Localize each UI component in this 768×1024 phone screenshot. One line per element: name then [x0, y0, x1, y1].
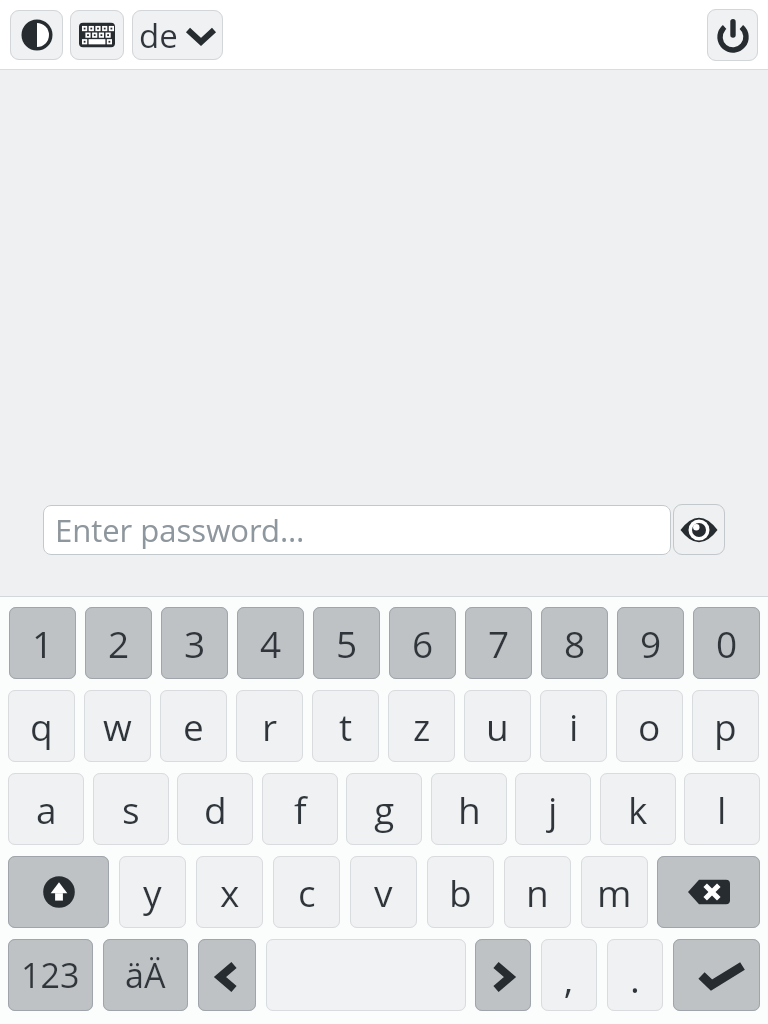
button[interactable]: e: [160, 690, 227, 762]
staticText: y: [143, 867, 162, 917]
staticText: x: [220, 867, 240, 917]
button[interactable]: t: [312, 690, 379, 762]
staticText: c: [298, 867, 316, 917]
staticText: 4: [260, 618, 282, 668]
staticText: o: [638, 701, 661, 751]
button[interactable]: Enter password…: [43, 505, 671, 555]
button[interactable]: de: [132, 10, 223, 60]
button[interactable]: 0: [693, 607, 760, 679]
button[interactable]: [707, 9, 758, 61]
staticText: j: [548, 784, 558, 834]
button[interactable]: ,: [541, 939, 597, 1011]
button[interactable]: [266, 939, 466, 1011]
button[interactable]: z: [388, 690, 455, 762]
button[interactable]: [198, 939, 256, 1011]
button[interactable]: o: [616, 690, 683, 762]
button[interactable]: j: [515, 773, 591, 845]
staticText: l: [717, 784, 727, 834]
staticText: ,: [564, 953, 574, 1003]
button[interactable]: c: [273, 856, 340, 928]
button[interactable]: [673, 504, 725, 555]
button[interactable]: 9: [617, 607, 684, 679]
staticText: 5: [336, 618, 358, 668]
button[interactable]: p: [692, 690, 759, 762]
staticText: h: [458, 784, 481, 834]
staticText: k: [628, 784, 648, 834]
button[interactable]: [70, 10, 124, 60]
button[interactable]: u: [464, 690, 531, 762]
button[interactable]: d: [177, 773, 253, 845]
button[interactable]: 6: [389, 607, 456, 679]
staticText: 2: [108, 618, 130, 668]
staticText: r: [262, 701, 278, 751]
button[interactable]: [10, 10, 63, 60]
button[interactable]: 5: [313, 607, 380, 679]
button[interactable]: .: [607, 939, 663, 1011]
button[interactable]: [673, 939, 760, 1011]
button[interactable]: n: [504, 856, 571, 928]
staticText: e: [183, 701, 204, 751]
button[interactable]: 123: [8, 939, 93, 1011]
staticText: s: [122, 784, 140, 834]
staticText: f: [294, 784, 307, 834]
staticText: q: [30, 701, 53, 751]
button[interactable]: q: [8, 690, 75, 762]
button[interactable]: w: [84, 690, 151, 762]
button[interactable]: 8: [541, 607, 608, 679]
staticText: m: [597, 867, 632, 917]
staticText: u: [486, 701, 509, 751]
button[interactable]: a: [8, 773, 84, 845]
staticText: 7: [488, 618, 510, 668]
staticText: d: [204, 784, 227, 834]
staticText: de: [139, 13, 178, 58]
button[interactable]: [8, 856, 109, 928]
button[interactable]: s: [93, 773, 169, 845]
staticText: 123: [21, 952, 80, 998]
staticText: 8: [564, 618, 586, 668]
button[interactable]: v: [350, 856, 417, 928]
staticText: 1: [32, 618, 54, 668]
staticText: äÄ: [125, 952, 166, 998]
staticText: n: [526, 867, 549, 917]
button[interactable]: [475, 939, 531, 1011]
button[interactable]: i: [540, 690, 607, 762]
staticText: 3: [184, 618, 206, 668]
button[interactable]: 1: [9, 607, 76, 679]
button[interactable]: 7: [465, 607, 532, 679]
staticText: 9: [640, 618, 662, 668]
staticText: b: [449, 867, 472, 917]
button[interactable]: m: [581, 856, 648, 928]
button[interactable]: b: [427, 856, 494, 928]
staticText: t: [339, 701, 353, 751]
button[interactable]: f: [262, 773, 338, 845]
button[interactable]: h: [431, 773, 507, 845]
staticText: a: [36, 784, 57, 834]
button[interactable]: l: [684, 773, 760, 845]
staticText: Enter password…: [55, 509, 305, 551]
staticText: v: [374, 867, 393, 917]
button[interactable]: 3: [161, 607, 228, 679]
button[interactable]: 2: [85, 607, 152, 679]
staticText: g: [374, 784, 395, 834]
staticText: i: [569, 701, 579, 751]
button[interactable]: x: [196, 856, 263, 928]
button[interactable]: y: [119, 856, 186, 928]
button[interactable]: äÄ: [103, 939, 188, 1011]
staticText: z: [413, 701, 431, 751]
button[interactable]: r: [236, 690, 303, 762]
staticText: 0: [716, 618, 738, 668]
button[interactable]: k: [600, 773, 676, 845]
button[interactable]: g: [346, 773, 422, 845]
staticText: 6: [412, 618, 434, 668]
staticText: p: [714, 701, 737, 751]
button[interactable]: 4: [237, 607, 304, 679]
staticText: w: [103, 701, 132, 751]
button[interactable]: [657, 856, 760, 928]
staticText: .: [630, 953, 640, 1003]
